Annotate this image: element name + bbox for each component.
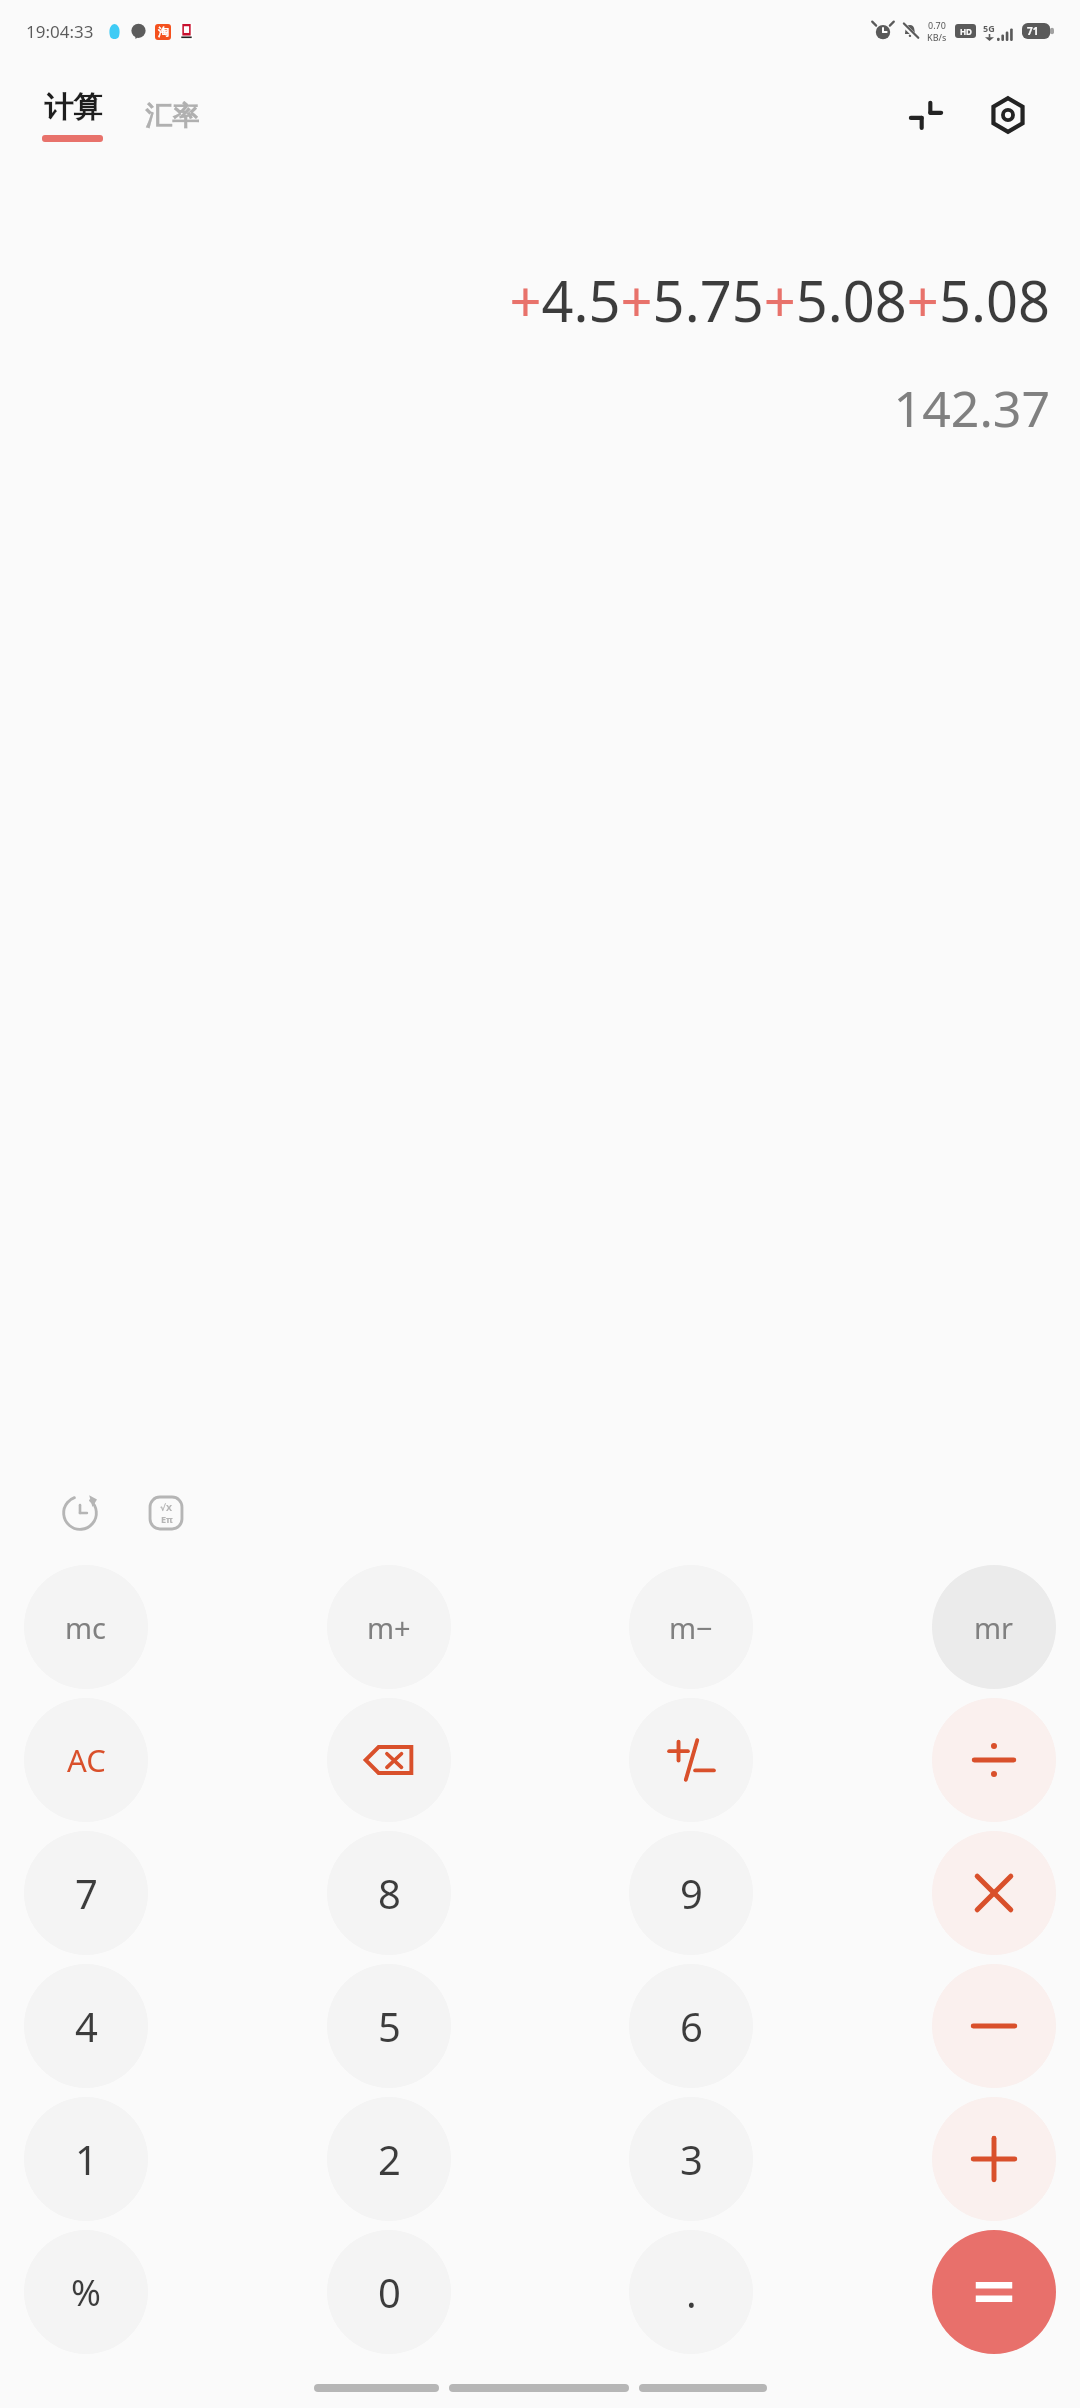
staticText: 汇率	[145, 99, 199, 133]
staticText: 3	[680, 2132, 703, 2186]
button[interactable]: 汇率	[137, 95, 207, 137]
button[interactable]: 9	[629, 1831, 753, 1955]
button[interactable]: Divide	[932, 1698, 1056, 1822]
staticText: 5	[378, 1999, 401, 2053]
button[interactable]: 8	[327, 1831, 451, 1955]
button[interactable]: 计算	[34, 85, 111, 146]
staticText: 6	[680, 1999, 703, 2053]
staticText: %	[71, 2268, 101, 2317]
button[interactable]: .	[629, 2230, 753, 2354]
button[interactable]: Back	[314, 2384, 439, 2392]
button[interactable]: 2	[327, 2097, 451, 2221]
staticText: 7	[75, 1866, 98, 1920]
staticText: HD	[960, 26, 972, 37]
staticText: AC	[67, 1739, 106, 1781]
other: Silent	[901, 22, 919, 40]
button[interactable]: Backspace	[327, 1698, 451, 1822]
staticText: mr	[974, 1608, 1014, 1647]
staticText: m−	[669, 1608, 713, 1647]
button[interactable]: m+	[327, 1565, 451, 1689]
button[interactable]: Multiply	[932, 1831, 1056, 1955]
button[interactable]: 4	[24, 1964, 148, 2088]
staticText: KB/s	[927, 31, 947, 43]
staticText: 淘	[158, 25, 169, 39]
button[interactable]: Home	[449, 2384, 629, 2392]
staticText: 4	[75, 1999, 98, 2053]
button[interactable]: mc	[24, 1565, 148, 1689]
staticText: +4.5+5.75+5.08+5.08	[30, 262, 1050, 338]
staticText: 9	[680, 1866, 703, 1920]
staticText: .	[686, 2265, 697, 2319]
button[interactable]: 6	[629, 1964, 753, 2088]
staticText: 19:04:33	[26, 20, 94, 43]
staticText: 计算	[44, 89, 102, 126]
button[interactable]: Settings	[980, 87, 1036, 143]
staticText: 8	[378, 1866, 401, 1920]
button[interactable]: Scientific mode	[136, 1483, 196, 1543]
staticText: 1	[75, 2132, 98, 2186]
button[interactable]: Plus minus	[629, 1698, 753, 1822]
button[interactable]: History	[50, 1483, 110, 1543]
staticText: √X	[160, 1501, 173, 1513]
staticText: 0.70	[928, 19, 946, 31]
button[interactable]: 1	[24, 2097, 148, 2221]
staticText: 5G	[983, 22, 995, 34]
staticText: 2	[378, 2132, 401, 2186]
button[interactable]: Equals	[932, 2230, 1056, 2354]
button[interactable]: Recents	[639, 2384, 767, 2392]
staticText: m+	[367, 1608, 411, 1647]
button[interactable]: m−	[629, 1565, 753, 1689]
button[interactable]: %	[24, 2230, 148, 2354]
button[interactable]: 5	[327, 1964, 451, 2088]
button[interactable]: 7	[24, 1831, 148, 1955]
staticText: Eπ	[161, 1513, 173, 1525]
button[interactable]: Plus	[932, 2097, 1056, 2221]
button[interactable]: mr	[932, 1565, 1056, 1689]
button[interactable]: 3	[629, 2097, 753, 2221]
staticText: 142.37	[30, 374, 1050, 442]
staticText: 71	[1027, 24, 1039, 38]
other: Alarm	[874, 22, 892, 40]
button[interactable]: Minus	[932, 1964, 1056, 2088]
button[interactable]: Collapse	[898, 87, 954, 143]
staticText: mc	[65, 1608, 107, 1647]
button[interactable]: AC	[24, 1698, 148, 1822]
staticText: 0	[378, 2265, 401, 2319]
button[interactable]: 0	[327, 2230, 451, 2354]
